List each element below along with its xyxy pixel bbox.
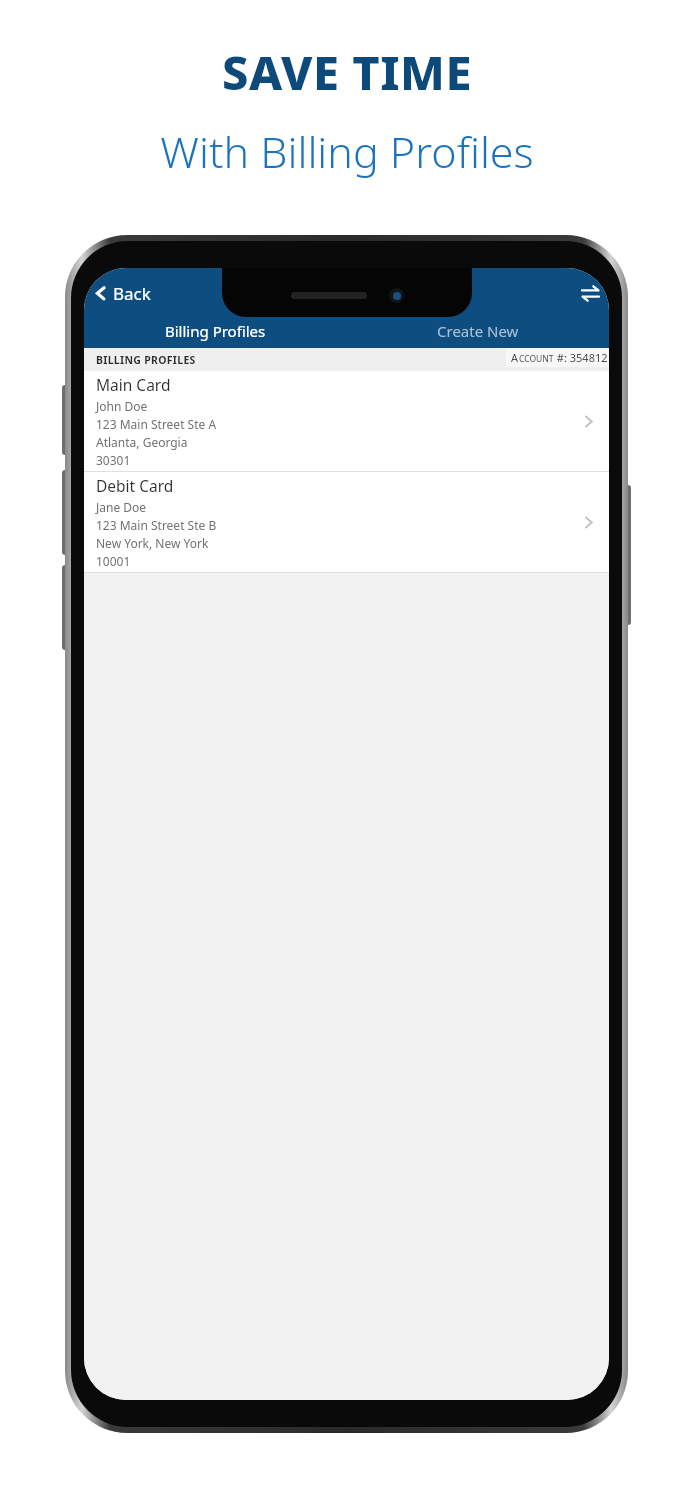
staticText: A <box>511 350 519 365</box>
staticText: Jane Doe <box>96 499 147 515</box>
button[interactable]: Billing Profiles <box>84 314 346 348</box>
staticText: With Billing Profiles <box>160 122 534 181</box>
button[interactable]: Debit Card <box>84 472 609 572</box>
staticText: CCOUNT <box>519 353 554 365</box>
button[interactable]: Create New <box>346 314 609 348</box>
staticText: 30301 <box>96 452 131 468</box>
staticText: SAVE TIME <box>222 40 472 104</box>
staticText: BILLING PROFILES <box>96 353 196 367</box>
staticText: John Doe <box>96 398 148 414</box>
staticText: Debit Card <box>96 475 174 496</box>
staticText: 123 Main Street Ste B <box>96 517 217 533</box>
staticText: Billing Profiles <box>165 321 266 341</box>
staticText: #: 354812 <box>554 350 608 365</box>
staticText: Back <box>113 282 151 305</box>
staticText: New York, New York <box>96 535 209 551</box>
staticText: 10001 <box>96 553 131 569</box>
staticText: 123 Main Street Ste A <box>96 416 217 432</box>
button[interactable]: Main Card <box>84 371 609 471</box>
staticText: Main Card <box>96 374 171 395</box>
button[interactable]: Back <box>84 276 163 310</box>
staticText: Create New <box>437 321 519 341</box>
staticText: Atlanta, Georgia <box>96 434 188 450</box>
button[interactable]: Switch account <box>571 274 609 312</box>
